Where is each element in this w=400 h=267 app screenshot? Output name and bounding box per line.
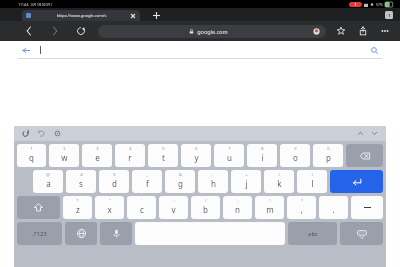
button[interactable]: 0 (313, 144, 343, 167)
staticText: @ (46, 172, 50, 177)
staticText: x (107, 204, 112, 215)
button[interactable]: - (198, 170, 228, 193)
button[interactable]: Settings (52, 128, 63, 139)
staticText: 1 (354, 2, 357, 7)
staticText: . (332, 204, 335, 215)
staticText: g (178, 178, 183, 189)
button[interactable]: $ (99, 170, 129, 193)
staticText: r (128, 152, 132, 163)
button[interactable]: Undo (20, 128, 31, 139)
button[interactable]: 1 (17, 144, 46, 167)
button[interactable]: & (165, 170, 195, 193)
staticText: a (46, 178, 51, 189)
button[interactable]: Hide keyboard (340, 222, 383, 245)
button[interactable]: 2 (49, 144, 79, 167)
staticText: 2 (63, 146, 66, 151)
button[interactable]: 8 (247, 144, 277, 167)
button[interactable]: ' (127, 196, 156, 219)
staticText: 1 (30, 146, 33, 151)
button[interactable]: Move up (355, 128, 366, 139)
button[interactable]: Forward (48, 24, 62, 38)
staticText: h (211, 178, 216, 189)
staticText: s (79, 178, 83, 189)
staticText: google.com (197, 28, 228, 35)
button[interactable]: 4 (115, 144, 145, 167)
button[interactable]: ) (297, 170, 327, 193)
staticText: z (76, 204, 80, 215)
staticText: 1 (388, 13, 391, 18)
staticText: y (194, 152, 199, 163)
button[interactable]: + (231, 170, 261, 193)
button[interactable]: 9 (280, 144, 310, 167)
staticText: .?123 (32, 230, 47, 238)
button[interactable]: Move down (369, 128, 380, 139)
button[interactable]: " (95, 196, 124, 219)
staticText: 57% (376, 2, 383, 7)
button[interactable]: . (319, 196, 348, 219)
button[interactable]: 3 (82, 144, 112, 167)
button[interactable]: .?123 (17, 222, 62, 245)
button[interactable]: _ (132, 170, 162, 193)
staticText: ? (301, 198, 303, 203)
button[interactable]: Redo (36, 128, 47, 139)
button[interactable]: 6 (181, 144, 211, 167)
button[interactable]: Back (20, 44, 32, 56)
button[interactable]: Close tab (129, 12, 136, 19)
staticText: k (277, 178, 282, 189)
staticText: m (266, 204, 274, 215)
button[interactable]: Search (368, 44, 380, 56)
staticText: u (227, 152, 232, 163)
button[interactable]: / (191, 196, 220, 219)
staticText: l (311, 178, 314, 189)
button[interactable]: Reload (74, 24, 88, 38)
staticText: 9 (294, 146, 297, 151)
staticText: 6 (195, 146, 198, 151)
button[interactable]: @ (33, 170, 63, 193)
staticText: " (109, 198, 111, 203)
button[interactable]: ? (287, 196, 316, 219)
staticText: t (162, 152, 165, 163)
button[interactable]: Shift (17, 196, 60, 219)
staticText: abc (308, 230, 318, 238)
button[interactable]: ; (223, 196, 252, 219)
button[interactable]: New tab (150, 9, 162, 21)
staticText: e (95, 152, 100, 163)
staticText: - (212, 172, 214, 177)
button[interactable]: Back (22, 24, 36, 38)
button[interactable]: More options (378, 24, 392, 38)
staticText: 17:44 3月18日(月) (18, 2, 52, 7)
button[interactable]: Voice input (100, 222, 132, 245)
button[interactable]: 5 (148, 144, 178, 167)
staticText: w (61, 152, 68, 163)
staticText: i (261, 152, 264, 163)
staticText: https://www.google.com/s (34, 13, 129, 18)
staticText: : (173, 198, 175, 203)
button[interactable]: : (159, 196, 188, 219)
staticText: # (80, 172, 83, 177)
staticText: j (245, 178, 248, 189)
button[interactable]: Share (356, 24, 370, 38)
button[interactable]: Change language (65, 222, 97, 245)
staticText: n (235, 204, 240, 215)
staticText: b (203, 204, 208, 215)
button[interactable]: 7 (214, 144, 244, 167)
staticText: o (293, 152, 298, 163)
button[interactable]: Dash (351, 196, 383, 219)
button[interactable]: abc (288, 222, 337, 245)
button[interactable]: Backspace (346, 144, 383, 167)
staticText: 0 (327, 146, 330, 151)
button[interactable]: ! (255, 196, 284, 219)
staticText: p (326, 152, 331, 163)
staticText: & (179, 172, 182, 177)
button[interactable]: ( (264, 170, 294, 193)
staticText: * (76, 198, 79, 203)
button[interactable]: https://www.google.com/s (22, 10, 140, 21)
button[interactable]: Bookmark (334, 24, 348, 38)
button[interactable]: Tab count (385, 11, 393, 19)
staticText: d (112, 178, 117, 189)
button[interactable]: Enter (330, 170, 383, 193)
button[interactable]: google.com (98, 25, 326, 38)
button[interactable]: * (63, 196, 92, 219)
button[interactable]: # (66, 170, 96, 193)
